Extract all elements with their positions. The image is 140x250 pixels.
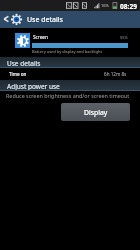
other: Navigate up [2,15,10,23]
staticText: 6h 12m 8s [104,71,127,77]
staticText: Adjust power use [7,82,60,91]
staticText: Screen [33,34,48,40]
staticText: 16% [101,3,109,8]
staticText: 55% [120,35,128,40]
button[interactable]: Navigate up [0,11,140,28]
staticText: Use details [27,15,63,25]
staticText: Battery used by display and backlight [32,49,102,54]
staticText: 08:29 [120,2,137,11]
staticText: Reduce screen brightness and/or screen t… [6,92,130,99]
button[interactable]: Time on [0,68,140,80]
staticText: Display [84,108,108,117]
staticText: Time on [9,71,27,77]
staticText: Use details [7,59,41,68]
button[interactable]: Display [61,103,130,121]
